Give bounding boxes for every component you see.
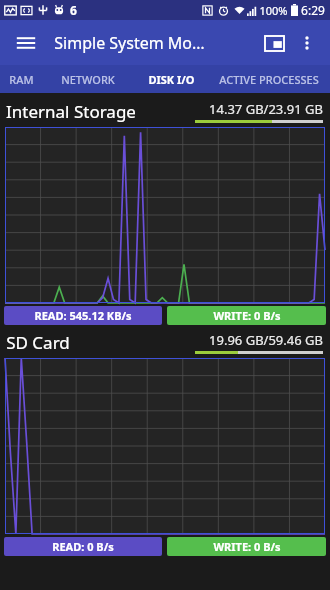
button[interactable]: RAM bbox=[0, 65, 42, 93]
staticText: 6:29 bbox=[301, 2, 325, 18]
staticText: RAM bbox=[9, 72, 34, 87]
staticText: WRITE: 0 B/s bbox=[213, 308, 281, 323]
button[interactable]: Picture in picture bbox=[256, 25, 292, 61]
button[interactable]: WRITE: 0 B/s bbox=[167, 306, 326, 325]
staticText: WRITE: 0 B/s bbox=[213, 539, 281, 554]
staticText: READ: 0 B/s bbox=[52, 539, 114, 554]
button[interactable]: DISK I/O bbox=[134, 65, 208, 93]
staticText: 19.96 GB/59.46 GB bbox=[209, 331, 323, 349]
staticText: SD Card bbox=[6, 331, 70, 354]
staticText: NETWORK bbox=[61, 72, 115, 87]
staticText: 100% bbox=[259, 3, 288, 18]
button[interactable]: WRITE: 0 B/s bbox=[167, 537, 326, 556]
button[interactable]: NETWORK bbox=[42, 65, 134, 93]
button[interactable]: READ: 0 B/s bbox=[4, 537, 162, 556]
staticText: 14.37 GB/23.91 GB bbox=[209, 100, 323, 118]
staticText: Simple System Mo… bbox=[54, 32, 205, 54]
staticText: ACTIVE PROCESSES bbox=[219, 72, 319, 87]
button[interactable]: ACTIVE PROCESSES bbox=[208, 65, 330, 93]
button[interactable]: Open navigation drawer bbox=[8, 25, 44, 61]
button[interactable]: More options bbox=[292, 28, 322, 58]
staticText: DISK I/O bbox=[148, 72, 195, 87]
button[interactable]: READ: 545.12 KB/s bbox=[4, 306, 162, 325]
staticText: READ: 545.12 KB/s bbox=[34, 308, 132, 323]
staticText: 6 bbox=[70, 2, 77, 18]
staticText: Internal Storage bbox=[6, 100, 136, 123]
